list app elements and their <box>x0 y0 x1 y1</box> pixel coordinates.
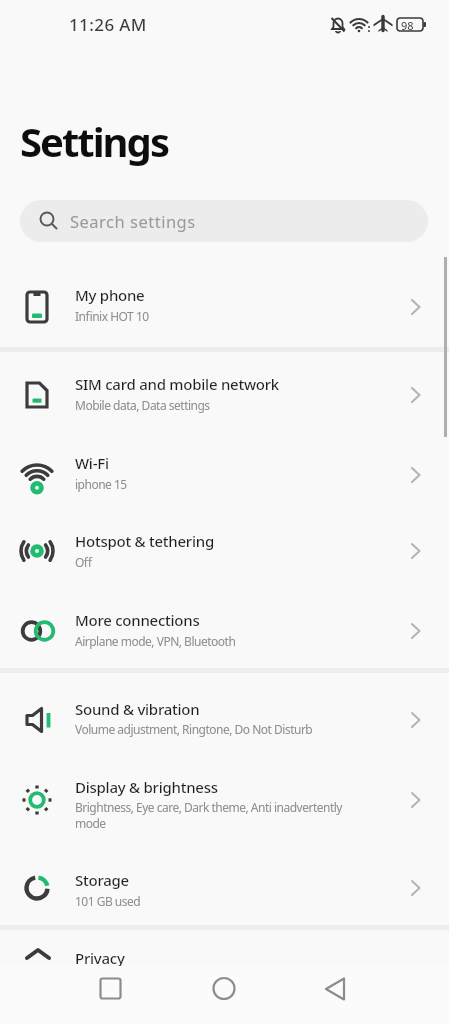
button[interactable] <box>200 966 248 1014</box>
button[interactable]: More connections <box>0 594 449 668</box>
staticText: 101 GB used <box>75 893 405 909</box>
staticText: Search settings <box>70 210 196 232</box>
button[interactable]: My phone <box>0 258 449 347</box>
staticText: My phone <box>75 285 145 305</box>
staticText: 11:26 AM <box>69 13 147 36</box>
staticText: 98 <box>401 18 414 33</box>
staticText: Wi-Fi <box>75 453 109 473</box>
staticText: SIM card and mobile network <box>75 374 279 394</box>
staticText: Hotspot & tethering <box>75 531 214 551</box>
button[interactable]: Hotspot & tethering <box>0 515 449 594</box>
staticText: Privacy <box>75 948 125 968</box>
button[interactable]: Privacy <box>0 930 449 1024</box>
button[interactable]: Wi-Fi <box>0 436 449 515</box>
staticText: Off <box>75 554 405 570</box>
staticText: Settings <box>20 114 168 168</box>
button[interactable] <box>312 966 360 1014</box>
staticText: Airplane mode, VPN, Bluetooth <box>75 633 405 649</box>
staticText: Brightness, Eye care, Dark theme, Anti i… <box>75 799 375 831</box>
button[interactable]: SIM card and mobile network <box>0 352 449 436</box>
button[interactable]: Search settings <box>20 200 428 242</box>
button[interactable]: Display & brightness <box>0 757 449 843</box>
staticText: Volume adjustment, Ringtone, Do Not Dist… <box>75 721 405 737</box>
button[interactable]: Storage <box>0 843 449 925</box>
staticText: Infinix HOT 10 <box>75 308 405 324</box>
button[interactable] <box>87 966 135 1014</box>
staticText: Storage <box>75 870 129 890</box>
staticText: Sound & vibration <box>75 699 200 719</box>
staticText: iphone 15 <box>75 476 405 492</box>
staticText: Display & brightness <box>75 777 218 797</box>
button[interactable]: Sound & vibration <box>0 673 449 757</box>
staticText: More connections <box>75 610 200 630</box>
staticText: Mobile data, Data settings <box>75 397 405 413</box>
